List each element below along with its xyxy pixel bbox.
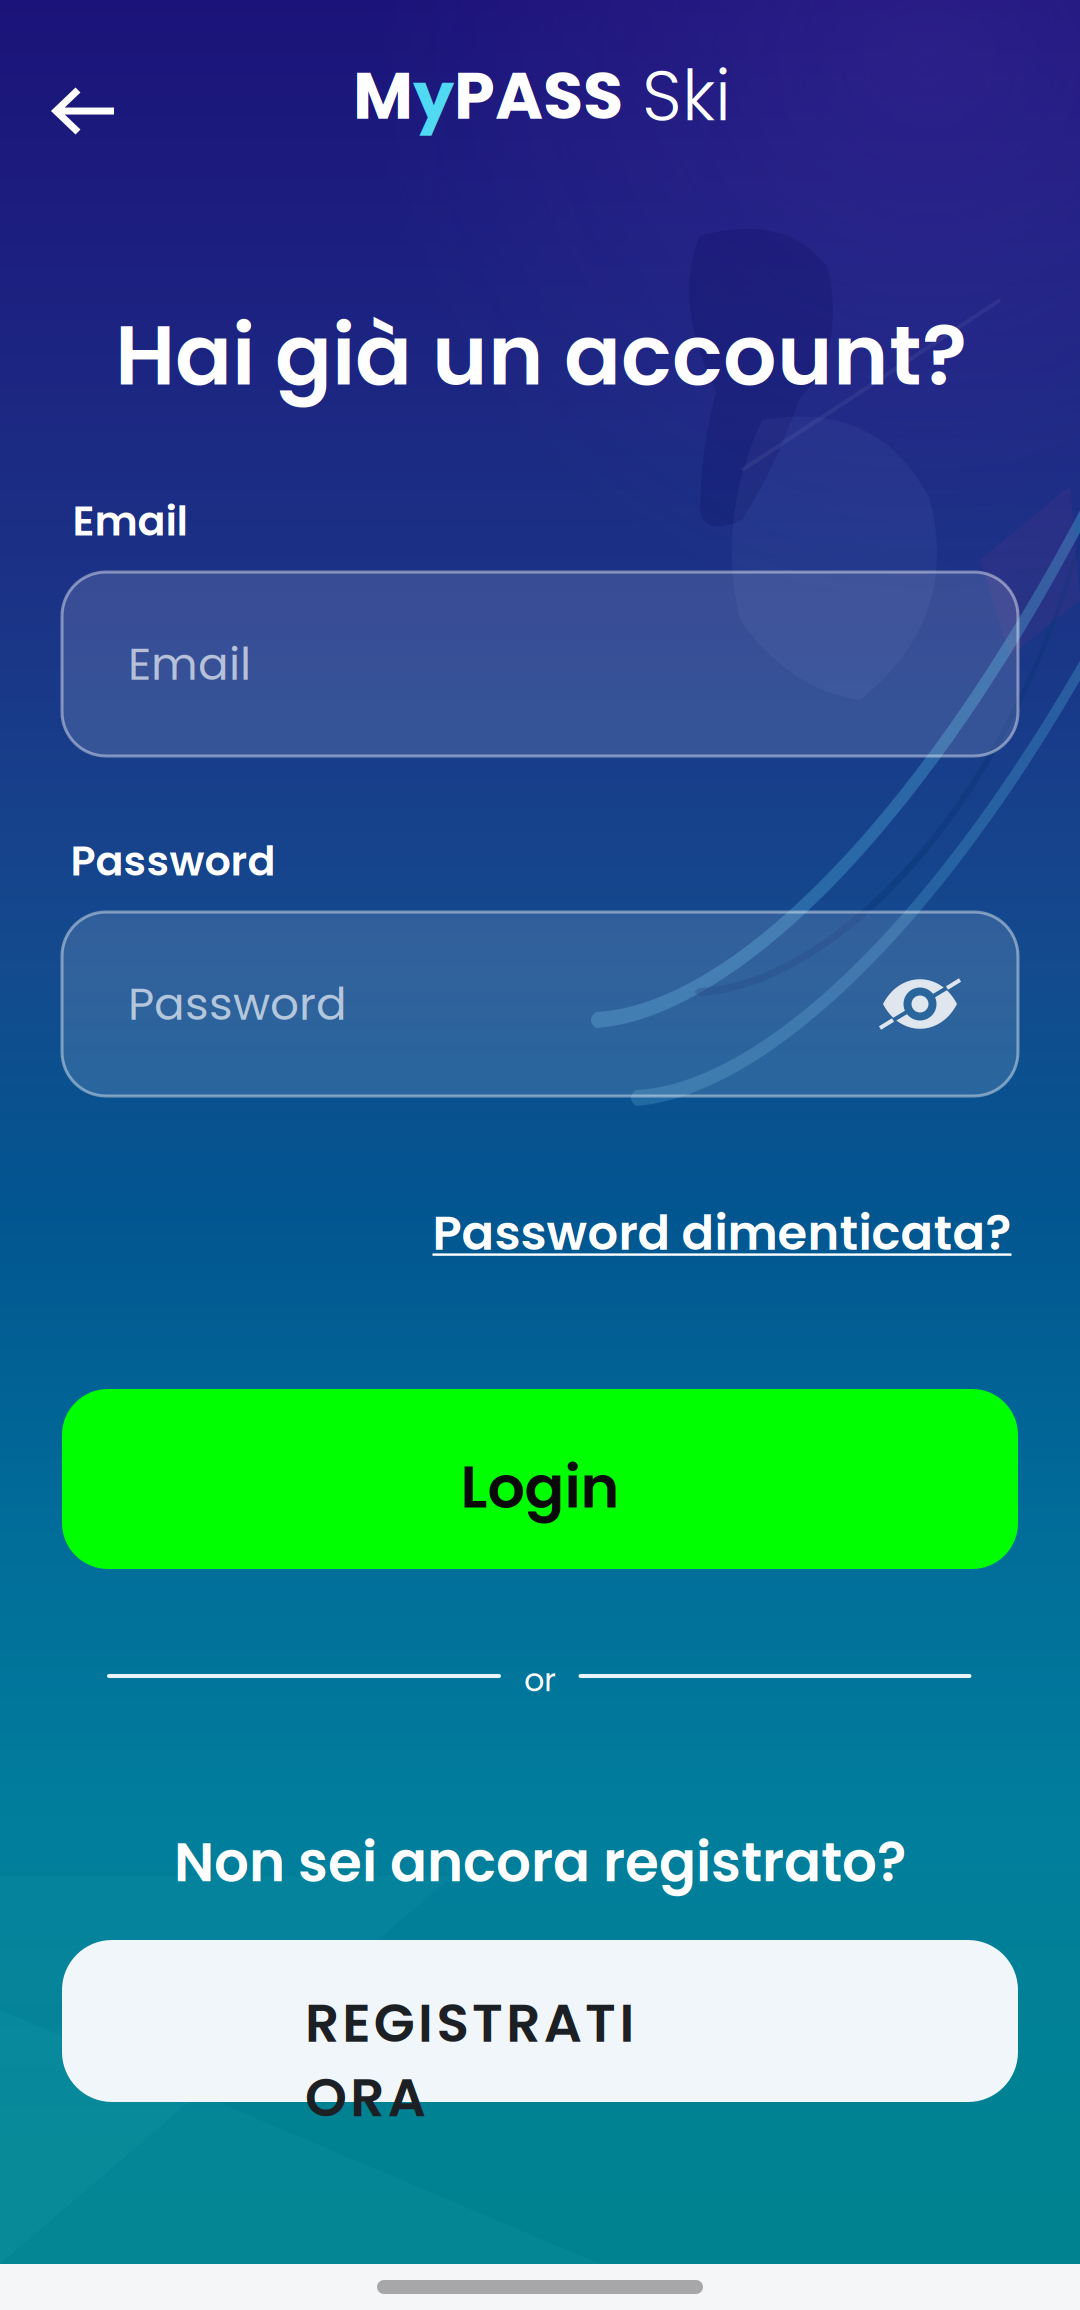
staticText: Password dimenticata? [432,1199,1011,1267]
staticText: y [413,50,454,142]
staticText: Login [460,1446,619,1528]
staticText: or [524,1658,556,1702]
button[interactable]: Back [20,51,148,171]
staticText: PASS [454,50,623,142]
staticText: Ski [623,47,731,145]
staticText: REGISTRATI ORA [305,1986,775,2060]
staticText: Password [128,972,347,1036]
staticText: M [353,50,413,142]
button[interactable]: Login [62,1389,1018,1569]
staticText: Email [72,492,187,550]
staticText: Email [128,632,251,696]
staticText: Non sei ancora registrato? [174,1824,906,1900]
staticText: Password [70,832,275,890]
button[interactable]: REGISTRATI ORA [62,1940,1018,2102]
staticText: Hai già un account? [115,296,967,414]
button[interactable]: Password dimenticata? [432,1189,1011,1277]
